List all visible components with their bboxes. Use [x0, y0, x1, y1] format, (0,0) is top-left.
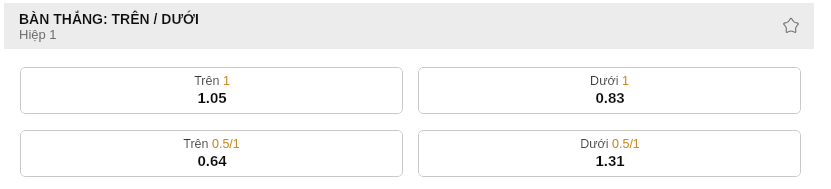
- staticText: Hiệp 1: [19, 27, 57, 42]
- staticText: BÀN THẮNG: TRÊN / DƯỚI: [19, 11, 199, 27]
- staticText: Dưới 0.5/1: [580, 137, 640, 151]
- button[interactable]: Trên 0.5/1: [20, 130, 403, 177]
- button[interactable]: Trên 1: [20, 67, 403, 114]
- button[interactable]: Dưới 1: [418, 67, 801, 114]
- staticText: 1.05: [197, 89, 227, 106]
- button[interactable]: BÀN THẮNG: TRÊN / DƯỚI: [4, 3, 766, 49]
- staticText: Trên 1: [194, 74, 230, 88]
- button[interactable]: Dưới 0.5/1: [418, 130, 801, 177]
- staticText: Trên 0.5/1: [183, 137, 240, 151]
- button[interactable]: Add to favourites: [766, 3, 814, 49]
- staticText: 0.83: [595, 89, 625, 106]
- staticText: Dưới 1: [590, 74, 629, 88]
- staticText: 1.31: [595, 152, 625, 169]
- staticText: 0.64: [197, 152, 227, 169]
